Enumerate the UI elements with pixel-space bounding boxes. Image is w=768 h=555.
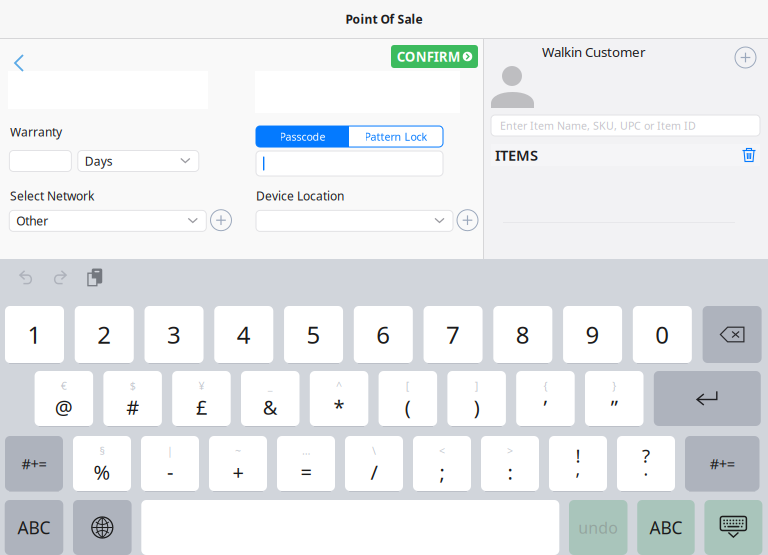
staticText: \	[372, 443, 376, 458]
staticText: 0	[655, 319, 669, 350]
button[interactable]: undo	[569, 500, 627, 555]
button[interactable]: ABC	[637, 500, 695, 555]
button[interactable]: Add location	[457, 210, 478, 231]
staticText: 6	[376, 319, 390, 350]
staticText: -	[167, 459, 173, 485]
button[interactable]: ^	[310, 371, 368, 426]
button[interactable]: 7	[424, 306, 483, 363]
staticText: ’	[543, 394, 547, 420]
staticText: Warranty	[10, 124, 62, 140]
staticText: <	[439, 443, 445, 458]
button[interactable]: Add customer	[735, 47, 756, 68]
button[interactable]: 3	[144, 306, 203, 363]
staticText: CONFIRM	[397, 48, 461, 65]
button[interactable]: 5	[284, 306, 343, 363]
button[interactable]: Dismiss keyboard	[704, 500, 762, 555]
button[interactable]: >	[481, 436, 539, 491]
button[interactable]: €	[35, 371, 93, 426]
button[interactable]: Delete all items	[742, 147, 756, 163]
staticText: >	[507, 443, 513, 458]
staticText: (	[405, 394, 411, 420]
staticText: ABC	[17, 516, 50, 539]
button[interactable]: ¥	[172, 371, 231, 426]
staticText: )	[474, 394, 480, 420]
staticText: {	[543, 378, 547, 393]
staticText: /	[370, 459, 377, 485]
staticText: *	[334, 394, 345, 420]
button[interactable]: [	[379, 371, 437, 426]
button[interactable]: <	[413, 436, 471, 491]
button[interactable]: {	[516, 371, 575, 426]
staticText: undo	[578, 517, 618, 538]
staticText: Enter Item Name, SKU, UPC or Item ID	[500, 118, 696, 133]
button[interactable]: |	[141, 436, 199, 491]
button[interactable]: CONFIRM	[391, 45, 478, 68]
button[interactable]: 4	[214, 306, 273, 363]
button[interactable]: 9	[563, 306, 622, 363]
staticText: 2	[97, 319, 111, 350]
staticText: Select Network	[10, 188, 94, 204]
staticText: ITEMS	[495, 145, 538, 165]
button[interactable]: ?	[617, 436, 675, 491]
staticText: 3	[167, 319, 181, 350]
staticText: Other	[16, 213, 48, 229]
staticText: 9	[586, 319, 600, 350]
button[interactable]: Paste	[81, 263, 104, 289]
staticText: Device Location	[256, 188, 344, 204]
button[interactable]: Passcode	[256, 126, 349, 147]
button[interactable]: $	[103, 371, 162, 426]
button[interactable]: }	[585, 371, 643, 426]
button[interactable]: Pattern Lock	[349, 126, 443, 147]
staticText: ABC	[649, 516, 682, 539]
staticText: £	[196, 394, 207, 420]
staticText: @	[55, 394, 73, 420]
button[interactable]: Delete	[703, 306, 762, 363]
button[interactable]: Next keyboard	[73, 500, 132, 555]
button[interactable]: ~	[209, 436, 267, 491]
button[interactable]: ABC	[5, 500, 63, 555]
staticText: 8	[516, 319, 530, 350]
button[interactable]: Add network	[210, 210, 231, 231]
button[interactable]: #+=	[5, 436, 63, 491]
staticText: Point Of Sale	[345, 11, 422, 27]
button[interactable]: !	[549, 436, 607, 491]
staticText: }	[612, 378, 616, 393]
staticText: …	[302, 443, 310, 458]
button[interactable]: 1	[5, 306, 64, 363]
button[interactable]: 2	[75, 306, 134, 363]
staticText: 4	[237, 319, 251, 350]
button[interactable]: Back	[7, 47, 32, 80]
staticText: #+=	[710, 454, 735, 473]
button[interactable]: 8	[493, 306, 552, 363]
button[interactable]: #+=	[685, 436, 759, 491]
staticText: ”	[611, 394, 618, 420]
button[interactable]: ]	[447, 371, 506, 426]
button[interactable]: 0	[633, 306, 692, 363]
button[interactable]: Redo	[48, 266, 71, 289]
staticText: !	[575, 443, 580, 468]
button[interactable]: _	[241, 371, 299, 426]
staticText: &	[263, 394, 278, 420]
button[interactable]: Return	[654, 371, 761, 426]
staticText: [	[406, 378, 410, 393]
staticText: Pattern Lock	[364, 129, 427, 144]
staticText: $	[130, 378, 136, 393]
staticText: §	[99, 443, 104, 458]
button[interactable]: …	[277, 436, 335, 491]
button[interactable]: 6	[354, 306, 413, 363]
staticText: ^	[336, 378, 342, 393]
staticText: ¥	[198, 378, 204, 393]
staticText: ]	[475, 378, 479, 393]
staticText: 5	[306, 319, 320, 350]
staticText: =	[300, 459, 311, 485]
button[interactable]: §	[73, 436, 131, 491]
button[interactable]: \	[345, 436, 403, 491]
button[interactable]: Undo	[15, 266, 38, 289]
staticText: 1	[27, 319, 41, 350]
staticText: :	[507, 459, 512, 485]
staticText: #+=	[21, 454, 46, 473]
staticText: |	[167, 443, 173, 458]
staticText: %	[93, 459, 110, 485]
staticText: €	[61, 378, 67, 393]
